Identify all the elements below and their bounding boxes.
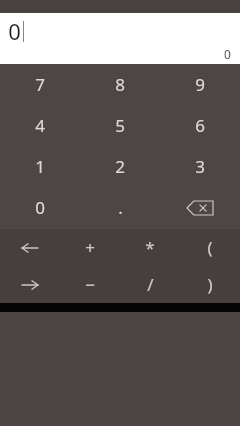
- button[interactable]: 9: [160, 64, 240, 105]
- staticText: +: [85, 236, 95, 259]
- button[interactable]: (: [180, 229, 240, 266]
- staticText: 0: [35, 196, 45, 219]
- button[interactable]: 6: [160, 105, 240, 146]
- staticText: 8: [115, 73, 125, 96]
- button[interactable]: 0: [0, 13, 240, 64]
- button[interactable]: .: [80, 187, 160, 228]
- staticText: 6: [195, 114, 205, 137]
- staticText: 4: [35, 114, 45, 137]
- button[interactable]: Move cursor left: [0, 229, 60, 266]
- button[interactable]: 4: [0, 105, 80, 146]
- button[interactable]: 8: [80, 64, 160, 105]
- staticText: 9: [195, 73, 205, 96]
- staticText: −: [85, 273, 95, 296]
- button[interactable]: Move cursor right: [0, 266, 60, 303]
- staticText: 0: [8, 16, 21, 46]
- button[interactable]: 3: [160, 146, 240, 187]
- staticText: 3: [195, 155, 205, 178]
- staticText: *: [145, 236, 155, 259]
- button[interactable]: 1: [0, 146, 80, 187]
- button[interactable]: −: [60, 266, 120, 303]
- staticText: .: [118, 196, 123, 219]
- button[interactable]: +: [60, 229, 120, 266]
- staticText: (: [207, 236, 213, 259]
- button[interactable]: ): [180, 266, 240, 303]
- staticText: /: [147, 273, 154, 296]
- staticText: ): [207, 273, 213, 296]
- button[interactable]: *: [120, 229, 180, 266]
- staticText: 2: [115, 155, 125, 178]
- staticText: 7: [35, 73, 45, 96]
- button[interactable]: 2: [80, 146, 160, 187]
- staticText: 1: [35, 155, 45, 178]
- button[interactable]: /: [120, 266, 180, 303]
- button[interactable]: 0: [0, 187, 80, 228]
- button[interactable]: 7: [0, 64, 80, 105]
- button[interactable]: 5: [80, 105, 160, 146]
- button[interactable]: Backspace: [160, 187, 240, 228]
- staticText: 0: [224, 46, 231, 62]
- staticText: 5: [115, 114, 125, 137]
